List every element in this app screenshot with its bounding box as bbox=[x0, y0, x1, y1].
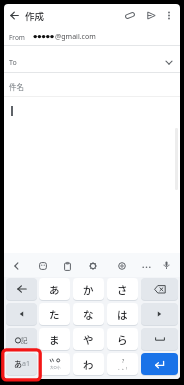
button[interactable]: か bbox=[73, 278, 104, 300]
button[interactable]: ら bbox=[107, 328, 138, 350]
staticText: From bbox=[9, 33, 25, 42]
staticText: 記 bbox=[21, 335, 28, 344]
staticText: な bbox=[83, 307, 94, 322]
button[interactable]: 大⇔小 bbox=[39, 353, 70, 375]
staticText: は bbox=[117, 307, 128, 322]
button[interactable] bbox=[125, 11, 135, 20]
button[interactable] bbox=[4, 46, 180, 72]
button[interactable] bbox=[6, 303, 37, 325]
button[interactable] bbox=[166, 11, 172, 20]
staticText: 、。! bbox=[118, 365, 128, 371]
button[interactable]: は bbox=[107, 303, 138, 325]
button[interactable]: や bbox=[73, 328, 104, 350]
staticText: あ bbox=[49, 282, 60, 297]
staticText: や bbox=[83, 332, 94, 347]
button[interactable]: さ bbox=[107, 278, 138, 300]
button[interactable] bbox=[4, 4, 180, 26]
staticText: 作成 bbox=[25, 9, 45, 23]
staticText: To bbox=[9, 58, 17, 68]
button[interactable] bbox=[147, 11, 156, 20]
button[interactable] bbox=[141, 303, 178, 325]
staticText: @gmail.com bbox=[55, 32, 96, 42]
staticText: さ bbox=[117, 282, 128, 297]
button[interactable] bbox=[118, 262, 126, 270]
button[interactable]: わ bbox=[73, 353, 104, 375]
button[interactable]: 記 bbox=[6, 328, 37, 350]
button[interactable]: ? bbox=[107, 353, 138, 375]
button[interactable] bbox=[141, 278, 178, 300]
button[interactable]: た bbox=[39, 303, 70, 325]
button[interactable] bbox=[163, 261, 170, 270]
button[interactable]: ま bbox=[39, 328, 70, 350]
staticText: a1 bbox=[22, 359, 30, 369]
button[interactable] bbox=[142, 266, 151, 269]
staticText: わ bbox=[83, 357, 94, 372]
button[interactable] bbox=[39, 262, 47, 270]
button[interactable] bbox=[165, 60, 173, 66]
button[interactable]: あ bbox=[39, 278, 70, 300]
button[interactable] bbox=[10, 11, 19, 20]
staticText: ま bbox=[49, 332, 60, 347]
button[interactable] bbox=[14, 262, 19, 270]
staticText: ? bbox=[122, 358, 125, 365]
button[interactable] bbox=[141, 328, 178, 350]
button[interactable] bbox=[141, 353, 178, 375]
staticText: た bbox=[49, 307, 60, 322]
staticText: 件名 bbox=[9, 81, 24, 92]
staticText: 大⇔小 bbox=[50, 365, 61, 370]
button[interactable]: な bbox=[73, 303, 104, 325]
staticText: ら bbox=[117, 332, 128, 347]
staticText: あ bbox=[14, 358, 22, 370]
button[interactable] bbox=[6, 278, 37, 300]
staticText: か bbox=[83, 282, 94, 297]
button[interactable] bbox=[89, 262, 97, 270]
button[interactable]: あ bbox=[6, 353, 37, 375]
button[interactable] bbox=[64, 262, 71, 271]
